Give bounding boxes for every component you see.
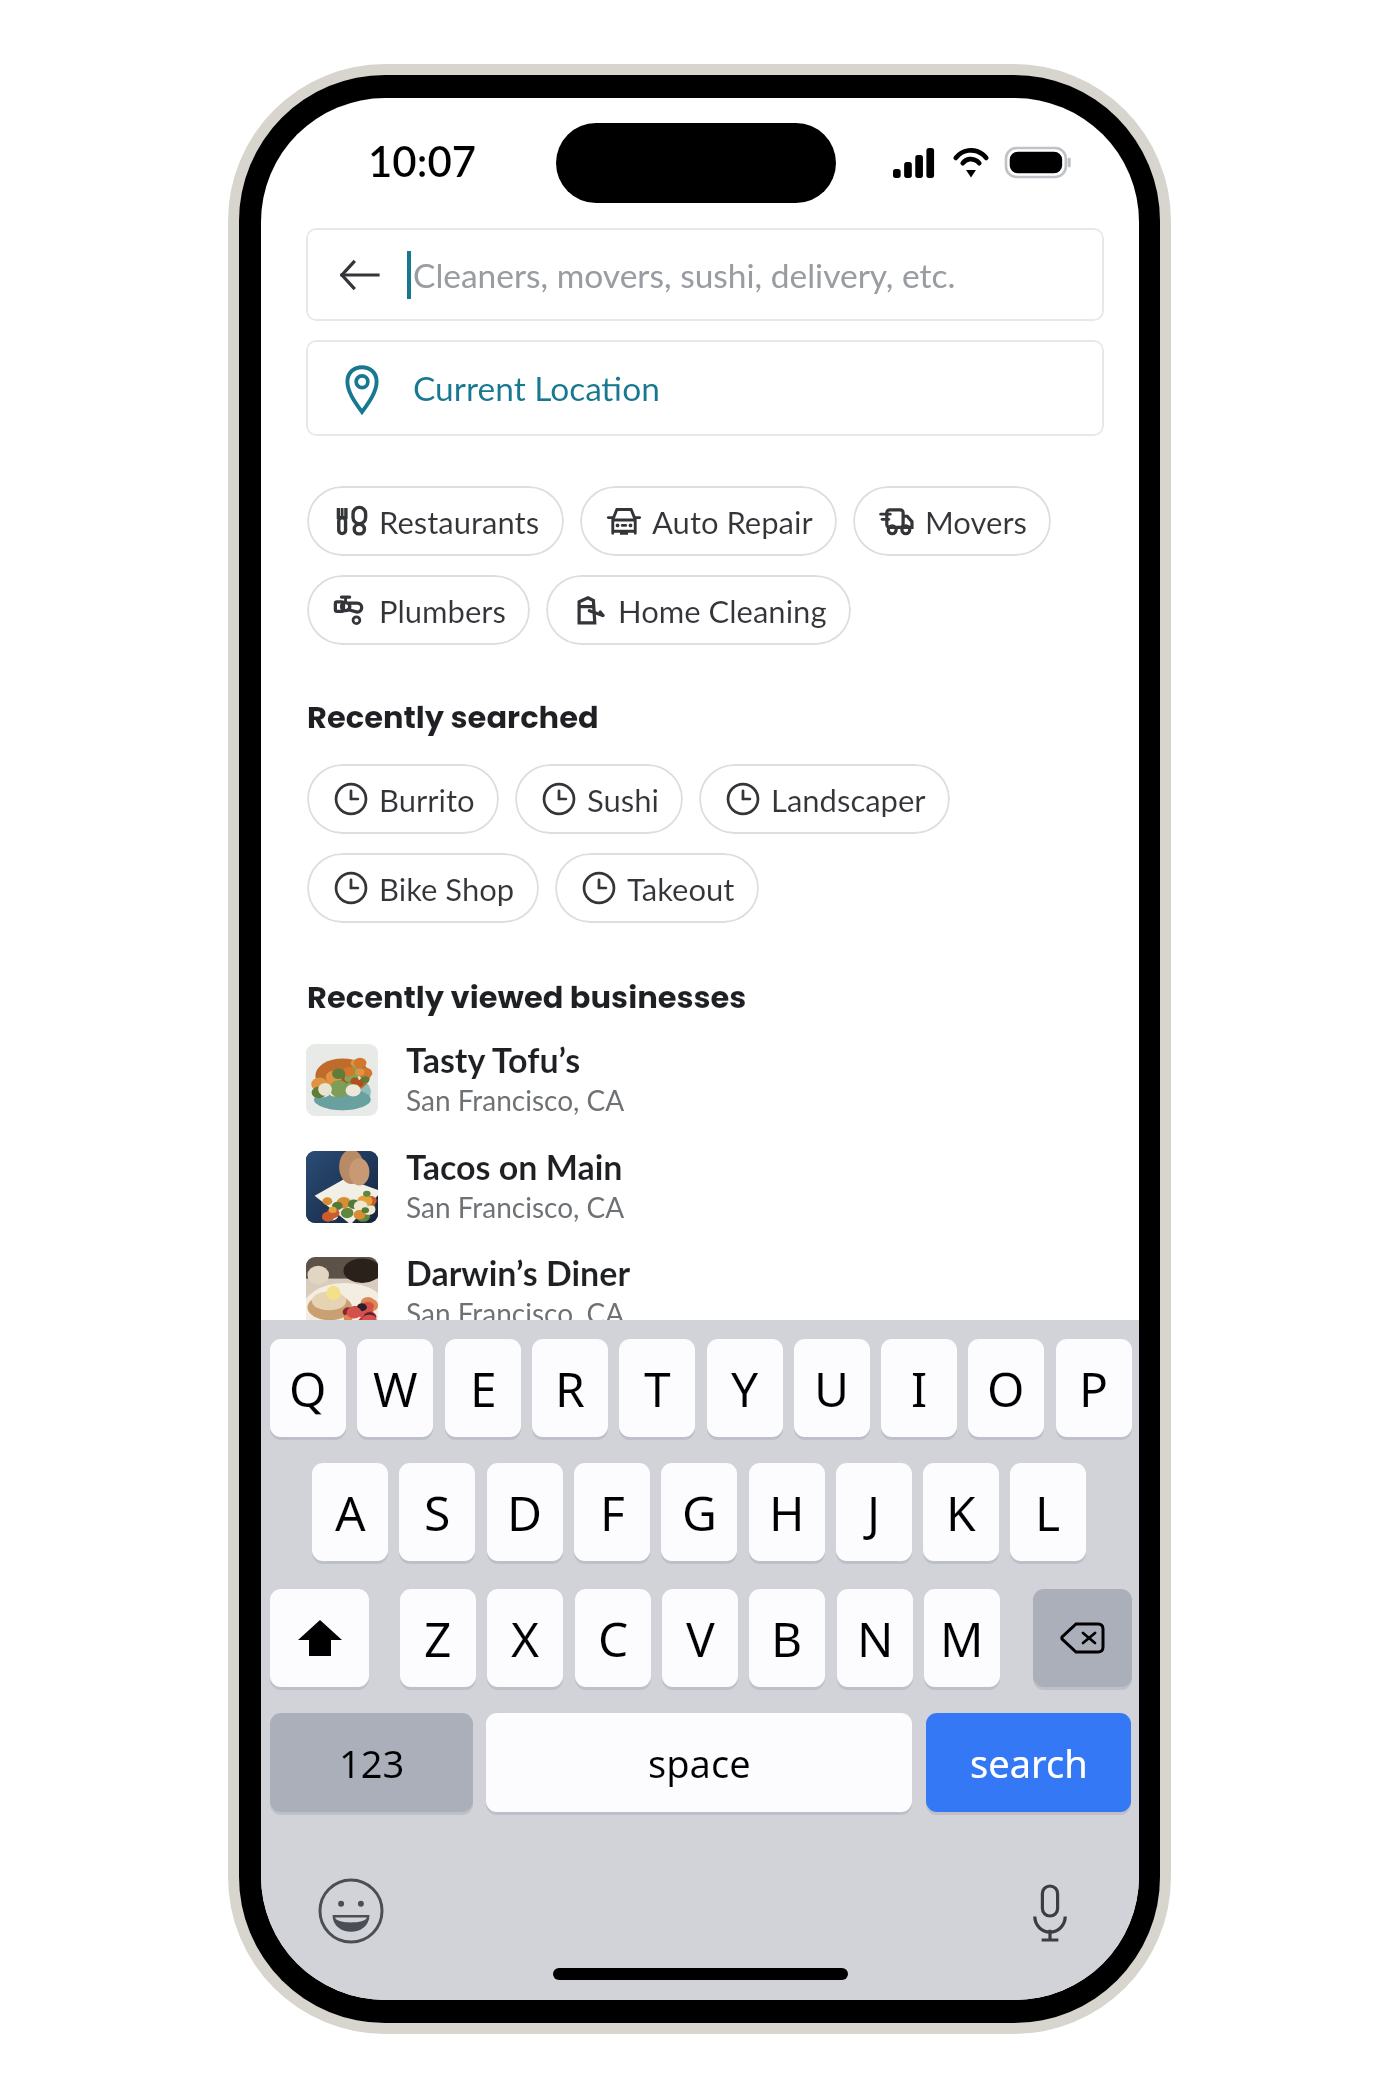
staticText: Recently viewed businesses (307, 976, 747, 1019)
button[interactable]: O (968, 1339, 1044, 1437)
staticText: San Francisco, CA (406, 1190, 625, 1224)
button[interactable]: Sushi (515, 764, 683, 834)
button[interactable]: G (661, 1463, 737, 1561)
staticText: Bike Shop (379, 870, 515, 907)
staticText: H (769, 1480, 805, 1545)
button[interactable]: Auto Repair (580, 486, 837, 556)
button[interactable]: Back (306, 228, 1104, 321)
staticText: Tasty Tofu’s (406, 1039, 581, 1080)
button[interactable]: H (749, 1463, 825, 1561)
button[interactable]: J (836, 1463, 912, 1561)
button[interactable]: D (487, 1463, 563, 1561)
staticText: search (970, 1737, 1088, 1789)
staticText: U (814, 1356, 850, 1421)
button[interactable]: E (445, 1339, 521, 1437)
button[interactable]: F (574, 1463, 650, 1561)
button[interactable]: Z (400, 1589, 476, 1687)
staticText: Burrito (379, 781, 475, 818)
staticText: Movers (925, 503, 1027, 540)
button[interactable]: 123 (270, 1713, 473, 1812)
other: Dictation (1031, 1883, 1069, 1943)
button[interactable]: T (619, 1339, 695, 1437)
button[interactable]: M (924, 1589, 1000, 1687)
staticText: F (600, 1480, 625, 1545)
button[interactable]: W (357, 1339, 433, 1437)
staticText: M (940, 1606, 984, 1671)
button[interactable]: Backspace (1033, 1589, 1132, 1687)
staticText: Plumbers (379, 592, 506, 629)
staticText: Auto Repair (652, 503, 813, 540)
staticText: P (1079, 1356, 1109, 1421)
staticText: Z (424, 1606, 452, 1671)
staticText: L (1035, 1480, 1061, 1545)
staticText: Q (289, 1356, 327, 1421)
button[interactable]: Landscaper (699, 764, 950, 834)
button[interactable]: Tasty Tofu’s (306, 1044, 826, 1122)
staticText: O (987, 1356, 1025, 1421)
button[interactable]: B (749, 1589, 825, 1687)
button[interactable]: Q (270, 1339, 346, 1437)
staticText: A (335, 1480, 366, 1545)
button[interactable]: V (662, 1589, 738, 1687)
staticText: X (511, 1606, 540, 1671)
staticText: Recently searched (307, 696, 599, 739)
staticText: 123 (339, 1737, 405, 1789)
staticText: S (424, 1480, 451, 1545)
staticText: W (373, 1356, 418, 1421)
button[interactable]: P (1056, 1339, 1132, 1437)
staticText: Takeout (627, 870, 735, 907)
button[interactable]: A (312, 1463, 388, 1561)
button[interactable]: C (575, 1589, 651, 1687)
button[interactable]: Home Cleaning (546, 575, 851, 645)
staticText: V (686, 1606, 715, 1671)
staticText: D (507, 1480, 543, 1545)
staticText: Cleaners, movers, sushi, delivery, etc. (413, 255, 956, 295)
button[interactable]: Bike Shop (307, 853, 539, 923)
staticText: B (771, 1606, 803, 1671)
staticText: San Francisco, CA (406, 1083, 625, 1117)
other: Back (340, 261, 378, 289)
staticText: Landscaper (771, 781, 926, 818)
staticText: Darwin’s Diner (406, 1252, 631, 1293)
staticText: G (682, 1480, 717, 1545)
button[interactable]: R (532, 1339, 608, 1437)
staticText: San Francisco, CA (406, 1296, 625, 1330)
staticText: E (470, 1356, 497, 1421)
staticText: 10:07 (368, 136, 477, 186)
button[interactable]: Darwin’s Diner (306, 1257, 826, 1335)
staticText: I (911, 1356, 928, 1421)
button[interactable]: N (837, 1589, 913, 1687)
staticText: Restaurants (379, 503, 540, 540)
staticText: Home Cleaning (618, 592, 827, 629)
button[interactable]: L (1010, 1463, 1086, 1561)
button[interactable]: Movers (853, 486, 1051, 556)
staticText: R (555, 1356, 585, 1421)
button[interactable]: Restaurants (307, 486, 564, 556)
staticText: Tacos on Main (406, 1146, 623, 1187)
staticText: Current Location (413, 368, 660, 408)
staticText: C (598, 1606, 629, 1671)
staticText: T (644, 1356, 671, 1421)
button[interactable]: Burrito (307, 764, 499, 834)
staticText: Y (731, 1356, 759, 1421)
button[interactable]: I (881, 1339, 957, 1437)
staticText: N (857, 1606, 894, 1671)
button[interactable]: S (399, 1463, 475, 1561)
button[interactable]: Current Location (306, 340, 1104, 436)
button[interactable]: X (487, 1589, 563, 1687)
button[interactable]: space (486, 1713, 912, 1812)
button[interactable]: Shift (270, 1589, 369, 1687)
button[interactable]: Takeout (555, 853, 759, 923)
button[interactable]: K (923, 1463, 999, 1561)
staticText: Sushi (587, 781, 659, 818)
staticText: K (946, 1480, 976, 1545)
staticText: space (648, 1737, 751, 1789)
staticText: J (867, 1480, 881, 1545)
button[interactable]: Plumbers (307, 575, 530, 645)
button[interactable]: Tacos on Main (306, 1151, 826, 1229)
button[interactable]: U (794, 1339, 870, 1437)
button[interactable]: Y (707, 1339, 783, 1437)
button[interactable]: search (926, 1713, 1131, 1812)
other: Emoji (318, 1878, 384, 1944)
